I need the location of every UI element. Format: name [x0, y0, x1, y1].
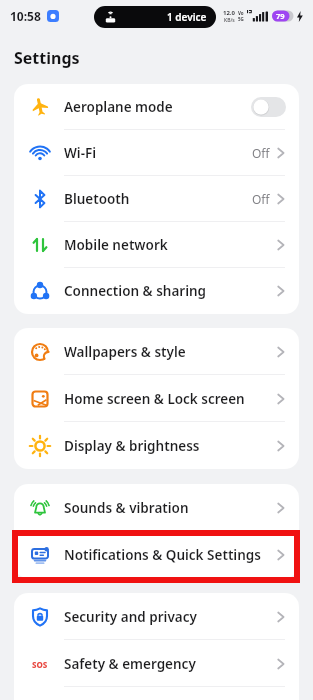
button[interactable]: Wallpapers & style: [14, 328, 299, 375]
button[interactable]: Notifications & Quick Settings: [14, 531, 299, 578]
staticText: KB/s: [224, 17, 235, 24]
staticText: Aeroplane mode: [64, 98, 173, 116]
button[interactable]: Home screen & Lock screen: [14, 375, 299, 422]
button[interactable]: SOS: [14, 640, 299, 687]
staticText: Off: [252, 191, 270, 207]
staticText: 79: [276, 11, 285, 21]
button[interactable]: Mobile network: [14, 222, 299, 268]
staticText: Vo: [238, 10, 244, 16]
staticText: 10:58: [10, 8, 41, 24]
button[interactable]: Wi-Fi: [14, 130, 299, 176]
staticText: Off: [252, 145, 270, 161]
staticText: Sounds & vibration: [64, 499, 189, 517]
staticText: Wallpapers & style: [64, 343, 186, 361]
staticText: Home screen & Lock screen: [64, 390, 245, 408]
staticText: SOS: [32, 659, 48, 670]
staticText: Settings: [14, 47, 80, 69]
button[interactable]: Security and privacy: [14, 593, 299, 640]
staticText: Safety & emergency: [64, 655, 196, 673]
staticText: 12.0: [223, 9, 235, 17]
staticText: 5G: [238, 16, 244, 22]
staticText: Display & brightness: [64, 437, 200, 455]
staticText: Bluetooth: [64, 190, 130, 208]
button[interactable]: Display & brightness: [14, 422, 299, 469]
staticText: Security and privacy: [64, 608, 197, 626]
staticText: Wi-Fi: [64, 144, 97, 162]
staticText: 1 device: [167, 10, 207, 24]
button[interactable]: 1 device: [94, 6, 216, 28]
button[interactable]: Sounds & vibration: [14, 484, 299, 531]
button[interactable]: Connection & sharing: [14, 268, 299, 314]
staticText: Connection & sharing: [64, 282, 207, 300]
staticText: Notifications & Quick Settings: [64, 546, 261, 564]
staticText: Mobile network: [64, 236, 168, 254]
button[interactable]: Aeroplane mode: [14, 84, 299, 130]
button[interactable]: Bluetooth: [14, 176, 299, 222]
